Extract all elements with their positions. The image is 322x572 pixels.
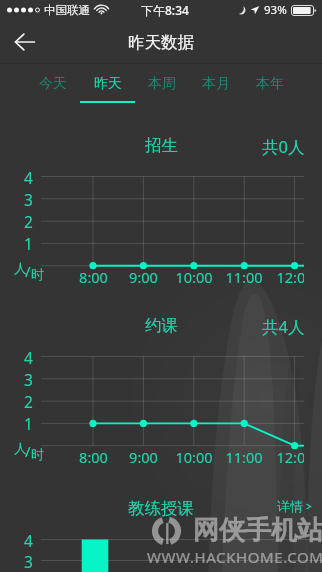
staticText: 4 bbox=[24, 347, 33, 366]
staticText: 12:00 bbox=[276, 447, 304, 467]
staticText: / bbox=[25, 261, 31, 281]
staticText: 人 bbox=[14, 260, 27, 276]
staticText: 10:00 bbox=[175, 267, 213, 287]
staticText: WWW.HACKHOME.COM bbox=[147, 547, 322, 567]
staticText: 共4人 bbox=[262, 315, 305, 338]
staticText: 约课 bbox=[145, 315, 178, 336]
staticText: 时 bbox=[31, 446, 44, 462]
staticText: 9:00 bbox=[129, 267, 158, 287]
staticText: 中国联通 bbox=[44, 3, 90, 17]
staticText: 12:00 bbox=[276, 267, 304, 287]
staticText: 93% bbox=[264, 2, 287, 18]
button[interactable]: Back bbox=[6, 24, 42, 60]
staticText: 8:00 bbox=[79, 267, 108, 287]
staticText: 1 bbox=[24, 413, 33, 432]
staticText: 11:00 bbox=[225, 267, 263, 287]
staticText: 招生 bbox=[145, 135, 178, 156]
staticText: 详情 bbox=[277, 498, 303, 514]
staticText: 9:00 bbox=[129, 447, 158, 467]
staticText: 时 bbox=[31, 266, 44, 282]
staticText: 本年 bbox=[256, 75, 284, 93]
staticText: 网侠手机站 bbox=[193, 514, 322, 547]
staticText: 教练授课 bbox=[128, 498, 194, 519]
button[interactable]: 今天 bbox=[25, 64, 80, 110]
staticText: 4 bbox=[24, 530, 33, 549]
button[interactable]: 昨天 bbox=[80, 64, 135, 110]
staticText: 本月 bbox=[202, 75, 230, 93]
button[interactable]: 本年 bbox=[243, 64, 297, 110]
staticText: 昨天数据 bbox=[128, 32, 194, 53]
staticText: / bbox=[25, 441, 31, 461]
staticText: 1 bbox=[24, 233, 33, 252]
staticText: 4 bbox=[24, 167, 33, 186]
button[interactable]: 详情 bbox=[277, 498, 312, 514]
staticText: 2 bbox=[24, 391, 33, 410]
staticText: 8:00 bbox=[79, 447, 108, 467]
staticText: 今天 bbox=[39, 75, 67, 93]
staticText: 3 bbox=[24, 551, 33, 570]
button[interactable]: 本月 bbox=[189, 64, 243, 110]
staticText: 11:00 bbox=[225, 447, 263, 467]
staticText: 3 bbox=[24, 369, 33, 388]
button[interactable]: 本周 bbox=[135, 64, 189, 110]
staticText: 昨天 bbox=[94, 75, 122, 93]
staticText: 3 bbox=[24, 189, 33, 208]
staticText: 2 bbox=[24, 211, 33, 230]
staticText: 10:00 bbox=[175, 447, 213, 467]
staticText: 本周 bbox=[148, 75, 176, 93]
staticText: 人 bbox=[14, 440, 27, 456]
staticText: 共0人 bbox=[262, 135, 305, 158]
staticText: 下午8:34 bbox=[141, 2, 189, 18]
